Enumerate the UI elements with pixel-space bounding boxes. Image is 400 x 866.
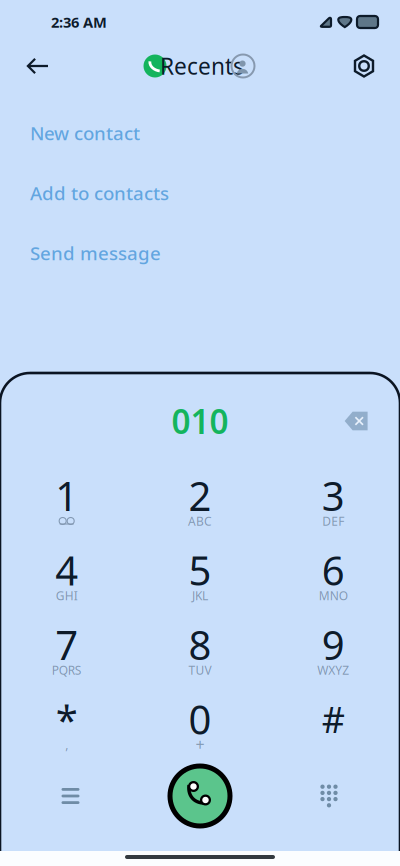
staticText: 7 xyxy=(55,618,78,671)
staticText: ABC xyxy=(188,513,212,529)
button[interactable]: Call xyxy=(168,764,232,828)
button[interactable]: Settings xyxy=(341,43,387,89)
staticText: TUV xyxy=(188,662,211,678)
staticText: 2 xyxy=(188,469,211,522)
staticText: + xyxy=(195,734,204,755)
staticText: 4 xyxy=(55,543,78,596)
button[interactable]: Delete xyxy=(333,398,379,444)
staticText: 5 xyxy=(188,543,211,596)
button[interactable]: 1 xyxy=(0,469,133,543)
button[interactable]: 3 xyxy=(267,469,400,543)
staticText: MNO xyxy=(319,587,348,603)
staticText: 9 xyxy=(322,618,345,671)
button[interactable]: 7 xyxy=(0,618,133,692)
staticText: Add to contacts xyxy=(30,181,169,205)
button[interactable]: 9 xyxy=(267,618,400,692)
button[interactable]: # xyxy=(267,692,400,767)
staticText: Recents xyxy=(160,51,244,81)
button[interactable]: More options xyxy=(43,769,97,823)
staticText: 2:36 AM xyxy=(51,12,107,32)
button[interactable]: New contact xyxy=(0,103,400,163)
button[interactable]: Back xyxy=(15,43,61,89)
staticText: 8 xyxy=(188,618,211,671)
staticText: * xyxy=(56,692,78,745)
staticText: PQRS xyxy=(52,662,82,678)
staticText: 0 xyxy=(188,692,211,745)
staticText: 010 xyxy=(171,399,228,443)
button[interactable]: Add to contacts xyxy=(0,163,400,223)
button[interactable]: 2 xyxy=(133,469,267,543)
staticText: 3 xyxy=(322,469,345,522)
button[interactable]: 8 xyxy=(133,618,267,692)
staticText: New contact xyxy=(30,121,140,145)
staticText: GHI xyxy=(56,587,78,603)
staticText: , xyxy=(65,736,68,752)
button[interactable]: 4 xyxy=(0,543,133,618)
button[interactable]: Keypad xyxy=(302,769,356,823)
button[interactable]: Send message xyxy=(0,223,400,283)
staticText: 1 xyxy=(55,469,78,522)
button[interactable]: 0 xyxy=(133,692,267,767)
staticText: Send message xyxy=(30,241,161,265)
button[interactable]: 6 xyxy=(267,543,400,618)
staticText: JKL xyxy=(192,587,208,603)
staticText: WXYZ xyxy=(317,662,349,678)
staticText: # xyxy=(322,695,345,743)
button[interactable]: * xyxy=(0,692,133,767)
staticText: DEF xyxy=(322,513,344,529)
staticText: 6 xyxy=(322,543,345,596)
button[interactable]: 5 xyxy=(133,543,267,618)
